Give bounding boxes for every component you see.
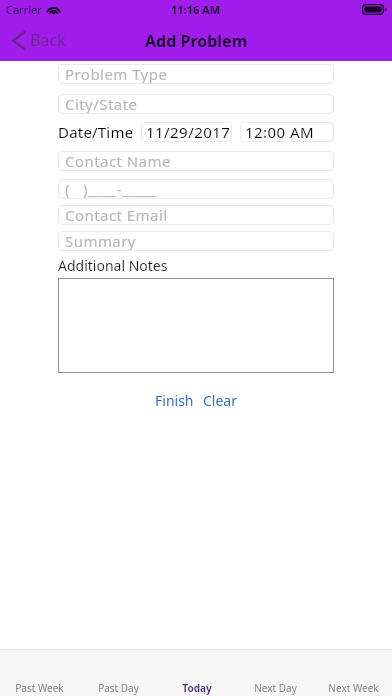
staticText: Next Week — [328, 681, 379, 695]
staticText: Add Problem — [145, 30, 248, 52]
button[interactable]: Past Week — [0, 650, 79, 696]
button[interactable]: Problem Type — [58, 64, 334, 84]
button[interactable]: Summary — [58, 231, 334, 251]
button[interactable] — [58, 278, 334, 373]
button[interactable]: ( )____-_____ — [58, 179, 334, 199]
button[interactable]: Past Day — [79, 650, 158, 696]
other: Battery full — [362, 4, 387, 15]
staticText: 11/29/2017 — [146, 122, 231, 142]
button[interactable]: 11/29/2017 — [141, 122, 232, 142]
staticText: Past Week — [15, 681, 64, 695]
other: Wi-Fi signal — [47, 5, 60, 15]
staticText: 11:16 AM — [171, 2, 221, 17]
button[interactable]: Finish — [153, 386, 196, 415]
button[interactable]: 12:00 AM — [240, 122, 334, 142]
staticText: Clear — [203, 391, 237, 410]
staticText: 12:00 AM — [245, 122, 315, 142]
staticText: Back — [30, 29, 66, 51]
staticText: Contact Name — [65, 151, 171, 171]
button[interactable]: Next Week — [314, 650, 392, 696]
staticText: Problem Type — [65, 64, 168, 84]
staticText: Date/Time — [58, 122, 134, 142]
button[interactable]: Back — [4, 24, 74, 56]
staticText: Carrier — [6, 2, 42, 17]
button[interactable]: City/State — [58, 94, 334, 114]
button[interactable]: Contact Email — [58, 205, 334, 225]
staticText: Additional Notes — [58, 256, 168, 275]
staticText: Finish — [155, 391, 194, 410]
button[interactable]: Contact Name — [58, 151, 334, 171]
staticText: Past Day — [98, 681, 139, 695]
staticText: Next Day — [254, 681, 297, 695]
button[interactable]: Clear — [201, 386, 239, 415]
staticText: Contact Email — [65, 205, 168, 225]
button[interactable]: Next Day — [236, 650, 314, 696]
staticText: Summary — [65, 231, 136, 251]
staticText: City/State — [65, 94, 138, 114]
staticText: ( )____-_____ — [65, 179, 158, 199]
staticText: Today — [182, 681, 212, 695]
button[interactable]: Today — [158, 650, 236, 696]
